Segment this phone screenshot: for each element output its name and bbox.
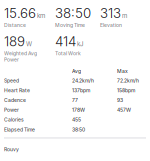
staticText: Weighted Avg Power xyxy=(4,50,37,63)
button[interactable]: Heart Rate xyxy=(4,85,146,95)
staticText: 93 xyxy=(117,97,123,103)
button[interactable]: 313 xyxy=(100,5,146,28)
staticText: Calories xyxy=(4,117,24,123)
staticText: W xyxy=(26,40,32,48)
staticText: 77 xyxy=(72,97,78,103)
staticText: Speed xyxy=(4,77,19,84)
staticText: Rouvy xyxy=(4,146,19,153)
staticText: Max xyxy=(117,68,128,74)
staticText: 455 xyxy=(72,117,81,123)
staticText: 158bpm xyxy=(117,87,135,93)
staticText: km xyxy=(37,12,45,19)
button[interactable]: 38:50 xyxy=(55,5,100,28)
staticText: 24.2km/h xyxy=(72,77,94,84)
staticText: 72.2km/h xyxy=(117,77,139,84)
button[interactable]: 189 xyxy=(4,33,55,63)
staticText: 189 xyxy=(4,33,25,49)
staticText: 313 xyxy=(100,5,121,21)
staticText: 178W xyxy=(72,107,85,113)
staticText: m xyxy=(122,12,127,19)
staticText: 414 xyxy=(55,33,76,49)
staticText: Moving Time xyxy=(55,22,85,28)
staticText: Total Work xyxy=(55,50,81,56)
staticText: 457W xyxy=(117,107,131,113)
button[interactable]: 414 xyxy=(55,33,100,57)
staticText: Heart Rate xyxy=(4,87,30,93)
button[interactable]: Rouvy xyxy=(4,138,19,153)
staticText: Distance xyxy=(4,22,26,28)
staticText: Elapsed Time xyxy=(4,126,35,133)
staticText: 38:50 xyxy=(55,5,91,21)
button[interactable]: Speed xyxy=(4,76,146,85)
button[interactable]: Power xyxy=(4,105,146,115)
button[interactable]: Cadence xyxy=(4,95,146,105)
staticText: Avg xyxy=(72,68,81,74)
button[interactable]: Elapsed Time xyxy=(4,125,146,134)
staticText: kJ xyxy=(77,40,84,48)
staticText: 38:50 xyxy=(72,126,85,133)
staticText: 137bpm xyxy=(72,87,90,93)
button[interactable]: 15.66 xyxy=(4,5,55,28)
staticText: 15.66 xyxy=(4,5,36,21)
button[interactable]: Calories xyxy=(4,115,146,125)
staticText: Elevation xyxy=(100,22,122,28)
staticText: Cadence xyxy=(4,97,26,103)
staticText: Power xyxy=(4,107,19,113)
